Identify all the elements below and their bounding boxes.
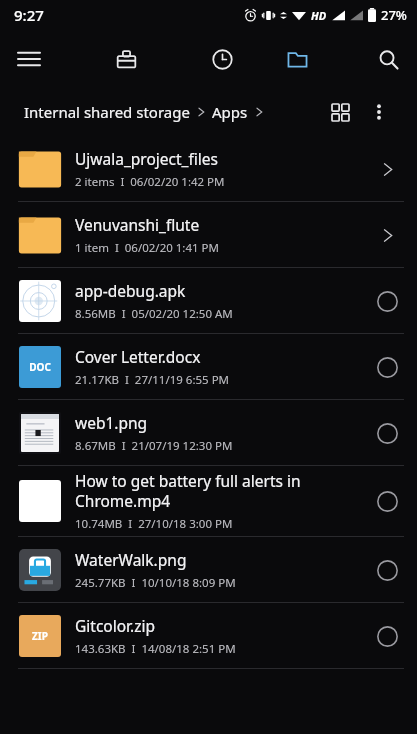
staticText: 9:27 bbox=[14, 5, 44, 25]
staticText: 2 items I 06/02/20 1:42 PM bbox=[75, 174, 225, 190]
button[interactable]: Search bbox=[365, 36, 411, 82]
button[interactable]: DOC bbox=[0, 334, 417, 399]
staticText: web1.png bbox=[75, 412, 148, 433]
button[interactable]: Ujwala_project_files bbox=[0, 136, 417, 201]
staticText: Gitcolor.zip bbox=[75, 615, 155, 636]
staticText: HD bbox=[311, 8, 327, 23]
staticText: 245.77KB I 10/10/18 8:09 PM bbox=[75, 575, 236, 591]
button[interactable]: app-debug.apk bbox=[0, 268, 417, 333]
button[interactable]: Grid view bbox=[320, 92, 360, 132]
staticText: ZIP bbox=[32, 629, 48, 643]
staticText: app-debug.apk bbox=[75, 280, 186, 301]
staticText: 1 item I 06/02/20 1:41 PM bbox=[75, 240, 219, 256]
staticText: 27% bbox=[381, 6, 407, 24]
button[interactable]: ZIP bbox=[0, 603, 417, 668]
staticText: How to get battery full alerts in Chrome… bbox=[75, 470, 362, 511]
button[interactable]: Venuvanshi_flute bbox=[0, 202, 417, 267]
staticText: Venuvanshi_flute bbox=[75, 214, 200, 235]
staticText: WaterWalk.png bbox=[75, 549, 187, 570]
button[interactable]: Safe folder bbox=[103, 36, 149, 82]
staticText: 21.17KB I 27/11/19 6:55 PM bbox=[75, 372, 230, 388]
button[interactable]: web1.png bbox=[0, 400, 417, 465]
button[interactable]: Menu bbox=[6, 36, 52, 82]
staticText: Internal shared storage bbox=[24, 102, 190, 122]
button[interactable]: Internal shared storage bbox=[24, 102, 264, 122]
staticText: Ujwala_project_files bbox=[75, 148, 218, 169]
staticText: 10.74MB I 27/10/18 3:00 PM bbox=[75, 516, 233, 532]
button[interactable]: WaterWalk.png bbox=[0, 537, 417, 602]
staticText: Apps bbox=[212, 102, 248, 122]
button[interactable]: Storage bbox=[274, 36, 320, 82]
button[interactable]: How to get battery full alerts in Chrome… bbox=[0, 466, 417, 536]
staticText: DOC bbox=[29, 360, 51, 374]
button[interactable]: More options bbox=[359, 92, 399, 132]
staticText: 8.56MB I 05/02/20 12:50 AM bbox=[75, 306, 233, 322]
staticText: 143.63KB I 14/08/18 2:51 PM bbox=[75, 641, 236, 657]
button[interactable]: Recent files bbox=[199, 36, 245, 82]
staticText: 8.67MB I 21/07/19 12:30 PM bbox=[75, 438, 233, 454]
staticText: Cover Letter.docx bbox=[75, 346, 201, 367]
